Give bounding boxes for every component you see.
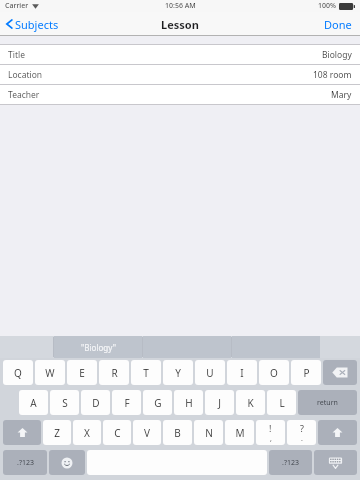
staticText: Location <box>8 69 43 81</box>
button[interactable]: L <box>267 390 296 415</box>
staticText: return <box>317 398 338 408</box>
staticText: M <box>235 426 245 440</box>
staticText: B <box>174 426 181 440</box>
button[interactable]: Y <box>163 360 193 385</box>
button[interactable]: S <box>50 390 79 415</box>
button[interactable]: .?123 <box>3 450 47 475</box>
button[interactable]: A <box>19 390 48 415</box>
staticText: N <box>205 426 213 440</box>
staticText: U <box>206 366 214 380</box>
button[interactable]: ! <box>256 420 285 445</box>
button[interactable]: I <box>227 360 257 385</box>
staticText: P <box>303 366 310 380</box>
staticText: Mary <box>331 89 352 101</box>
staticText: , <box>270 434 272 444</box>
staticText: Title <box>8 49 25 61</box>
staticText: .?123 <box>17 458 34 468</box>
button[interactable]: H <box>174 390 203 415</box>
staticText: X <box>84 426 90 440</box>
staticText: K <box>247 396 254 410</box>
button[interactable]: Teacher <box>0 85 360 104</box>
staticText: Teacher <box>8 89 40 101</box>
staticText: Q <box>14 366 22 380</box>
staticText: S <box>62 396 68 410</box>
staticText: Lesson <box>161 17 199 32</box>
button[interactable]: W <box>35 360 65 385</box>
button[interactable]: Backspace <box>323 360 357 385</box>
staticText: R <box>111 366 118 380</box>
button[interactable]: Shift <box>3 420 41 445</box>
button[interactable]: P <box>291 360 321 385</box>
staticText: Y <box>175 366 181 380</box>
staticText: T <box>143 366 149 380</box>
staticText: H <box>185 396 193 410</box>
staticText: ! <box>269 422 272 434</box>
staticText: "Biology" <box>81 342 116 353</box>
button[interactable]: Title <box>0 45 360 64</box>
staticText: V <box>144 426 150 440</box>
button[interactable]: G <box>143 390 172 415</box>
button[interactable]: D <box>81 390 110 415</box>
button[interactable]: N <box>194 420 223 445</box>
staticText: 100% <box>318 1 336 11</box>
button[interactable]: B <box>163 420 192 445</box>
staticText: Done <box>324 17 352 32</box>
staticText: ? <box>300 422 304 434</box>
staticText: Carrier <box>5 1 29 11</box>
button[interactable]: return <box>298 390 357 415</box>
button[interactable]: Done <box>316 12 360 36</box>
button[interactable]: Subjects <box>0 12 67 36</box>
staticText: 108 room <box>313 69 352 81</box>
button[interactable]: Shift <box>318 420 357 445</box>
button[interactable]: .?123 <box>269 450 312 475</box>
staticText: 10:56 AM <box>165 1 196 11</box>
button[interactable]: U <box>195 360 225 385</box>
staticText: E <box>79 366 85 380</box>
staticText: G <box>154 396 162 410</box>
staticText: F <box>124 396 130 410</box>
staticText: .?123 <box>282 458 299 468</box>
staticText: W <box>45 366 55 380</box>
button[interactable]: Emoji <box>49 450 85 475</box>
button[interactable]: ? <box>287 420 316 445</box>
button[interactable]: O <box>259 360 289 385</box>
button[interactable]: F <box>112 390 141 415</box>
staticText: Z <box>54 426 60 440</box>
button[interactable]: R <box>99 360 129 385</box>
button[interactable]: J <box>205 390 234 415</box>
button[interactable]: V <box>133 420 161 445</box>
button[interactable]: M <box>225 420 254 445</box>
staticText: Subjects <box>15 17 59 32</box>
button[interactable]: Hide keyboard <box>314 450 357 475</box>
staticText: O <box>270 366 278 380</box>
button[interactable]: "Biology" <box>54 336 142 358</box>
staticText: L <box>279 396 285 410</box>
button[interactable]: X <box>73 420 101 445</box>
staticText: D <box>92 396 100 410</box>
button[interactable]: E <box>67 360 97 385</box>
button[interactable]: K <box>236 390 265 415</box>
staticText: A <box>30 396 37 410</box>
button[interactable]: Q <box>3 360 33 385</box>
staticText: I <box>240 366 244 380</box>
staticText: . <box>301 434 303 444</box>
staticText: J <box>218 396 221 410</box>
button[interactable]: Location <box>0 65 360 84</box>
staticText: Biology <box>322 49 352 61</box>
button[interactable]: T <box>131 360 161 385</box>
button[interactable]: Z <box>43 420 71 445</box>
button[interactable]: C <box>103 420 131 445</box>
staticText: C <box>114 426 121 440</box>
